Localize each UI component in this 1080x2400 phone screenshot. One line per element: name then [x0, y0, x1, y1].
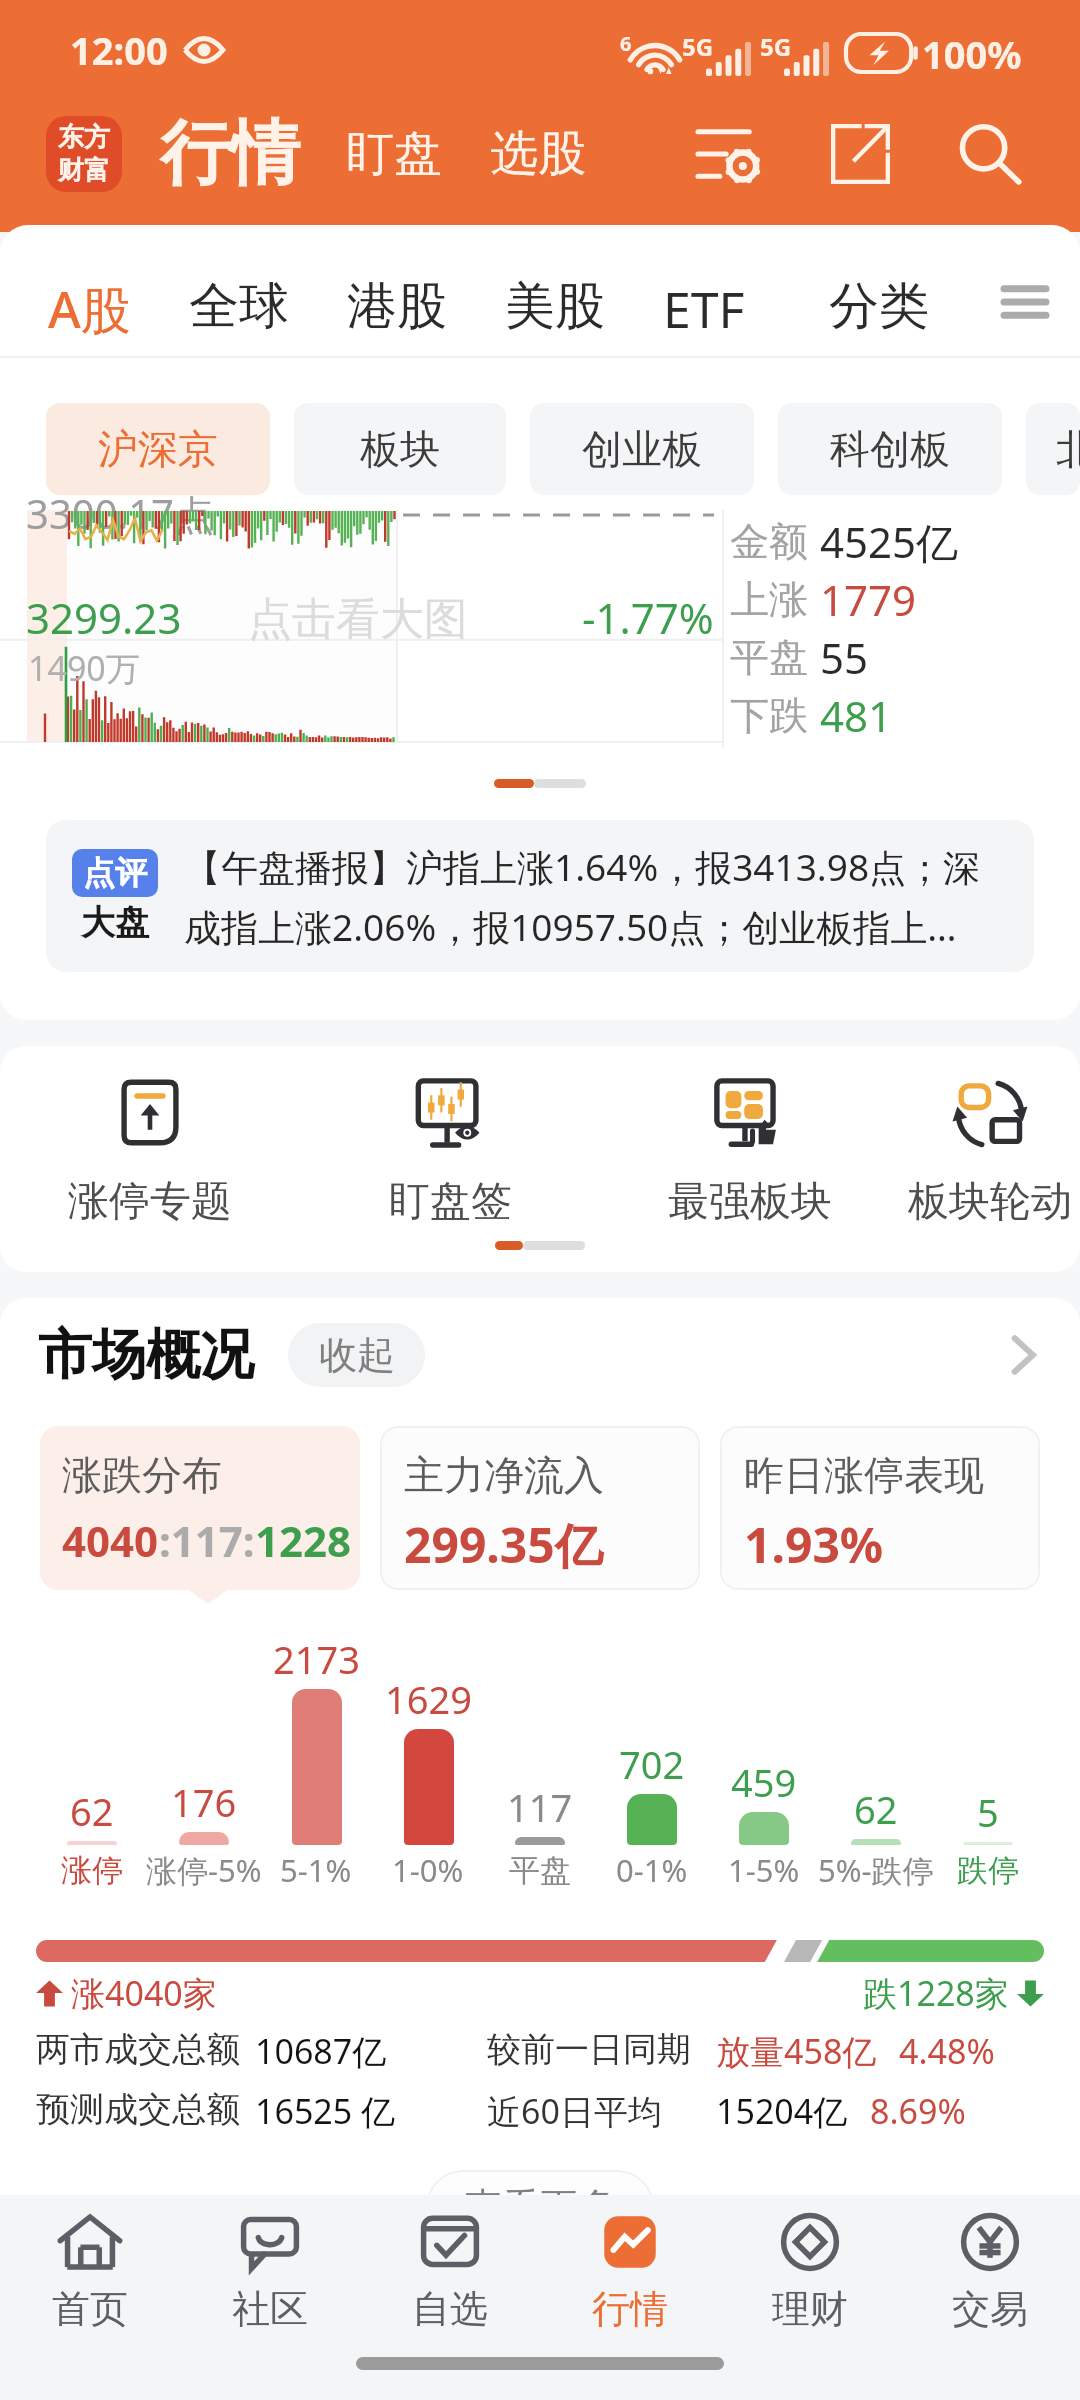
button[interactable]: 搜索 — [948, 116, 1032, 192]
staticText: 主力净流入 — [404, 1450, 604, 1500]
staticText: 创业板 — [582, 424, 702, 474]
staticText: 分类 — [829, 275, 929, 338]
staticText: 理财 — [772, 2285, 848, 2333]
button[interactable]: A股 — [48, 275, 131, 358]
staticText: 5-1% — [280, 1849, 352, 1891]
button[interactable]: 点评 — [46, 820, 1034, 972]
button[interactable]: 查看更多 — [426, 2170, 654, 2203]
staticText: 8.69% — [870, 2088, 966, 2134]
staticText: 5 — [977, 1786, 999, 1838]
staticText: 行情 — [592, 2285, 668, 2333]
staticText: 62 — [70, 1785, 114, 1837]
button[interactable]: 涨跌分布 — [40, 1426, 360, 1590]
staticText: 1629 — [385, 1673, 472, 1725]
staticText: 平盘 — [509, 1851, 571, 1890]
staticText: 美股 — [505, 275, 605, 338]
staticText: 跌停 — [957, 1851, 1019, 1890]
staticText: 板块轮动 — [908, 1176, 1072, 1228]
button[interactable]: 理财 — [720, 2195, 900, 2347]
staticText: 176 — [171, 1776, 237, 1828]
staticText: 299.35亿 — [404, 1512, 603, 1578]
staticText: 东方 — [58, 121, 110, 154]
button[interactable]: 港股 — [347, 275, 447, 358]
staticText: 预测成交总额 — [36, 2088, 240, 2131]
staticText: 55 — [820, 629, 869, 686]
staticText: 5G — [760, 30, 792, 63]
staticText: 较前一日同期 — [487, 2028, 691, 2071]
staticText: 港股 — [347, 275, 447, 338]
button[interactable]: ETF — [663, 275, 745, 358]
button[interactable]: 昨日涨停表现 — [720, 1426, 1040, 1590]
staticText: 跌1228家 — [863, 1970, 1009, 2016]
staticText: 117 — [507, 1781, 573, 1833]
button[interactable]: 东方财富 — [46, 116, 122, 192]
staticText: 收起 — [319, 1331, 395, 1379]
staticText: 财富 — [58, 154, 110, 187]
staticText: 3299.23 — [26, 589, 182, 646]
button[interactable]: 板块 — [294, 403, 506, 495]
button[interactable]: 自选 — [360, 2195, 540, 2347]
button[interactable]: 主力净流入 — [380, 1426, 700, 1590]
staticText: :117: — [159, 1512, 255, 1569]
button[interactable]: 北交所 — [1026, 403, 1080, 495]
staticText: 大盘 — [81, 901, 149, 944]
button[interactable]: 社区 — [180, 2195, 360, 2347]
staticText: 【午盘播报】沪指上涨1.64%，报3413.98点；深成指上涨2.06%，报10… — [184, 841, 1016, 952]
button[interactable]: 上证指数分时图，点击看大图 — [0, 510, 722, 748]
staticText: 市场概况 — [38, 1321, 254, 1389]
staticText: 北交所 — [1056, 424, 1080, 474]
button[interactable]: 选股 — [490, 124, 586, 184]
button[interactable]: 科创板 — [778, 403, 1002, 495]
staticText: 下跌 — [730, 691, 808, 740]
button[interactable]: 盯盘 — [346, 124, 442, 184]
staticText: 6 — [620, 30, 632, 57]
staticText: 2173 — [273, 1633, 360, 1685]
button[interactable]: 分类 — [829, 275, 929, 358]
button[interactable]: 更多 — [992, 269, 1058, 335]
staticText: 查看更多 — [464, 2183, 616, 2203]
staticText: A股 — [48, 275, 131, 343]
staticText: 1228 — [255, 1512, 352, 1569]
staticText: 板块 — [360, 424, 440, 474]
staticText: 1-5% — [728, 1849, 800, 1891]
staticText: 62 — [854, 1783, 898, 1835]
staticText: 481 — [820, 687, 893, 744]
button[interactable]: 盯盘签 — [300, 1078, 600, 1228]
staticText: 4040 — [62, 1512, 159, 1569]
button[interactable]: 沪深京 — [46, 403, 270, 495]
button[interactable]: 行情 — [540, 2195, 720, 2347]
staticText: 点评 — [83, 853, 147, 893]
staticText: 100% — [922, 28, 1022, 80]
button[interactable]: 市场概况 — [38, 1304, 1042, 1406]
staticText: 涨停专题 — [68, 1176, 232, 1228]
button[interactable]: 最强板块 — [600, 1078, 900, 1228]
staticText: 两市成交总额 — [36, 2028, 240, 2071]
staticText: 10687亿 — [255, 2028, 387, 2074]
button[interactable]: 创业板 — [530, 403, 754, 495]
staticText: 近60日平均 — [487, 2088, 662, 2134]
button[interactable]: 全球 — [189, 275, 289, 358]
staticText: 自选 — [412, 2285, 488, 2333]
staticText: 平盘 — [730, 633, 808, 682]
button[interactable]: 分享 — [820, 116, 900, 192]
button[interactable]: 首页 — [0, 2195, 180, 2347]
button[interactable]: 行情 — [160, 110, 300, 198]
staticText: 12:00 — [70, 24, 168, 76]
button[interactable]: 涨停专题 — [0, 1078, 300, 1228]
staticText: 1779 — [820, 571, 917, 628]
staticText: 15204亿 — [716, 2088, 848, 2134]
button[interactable]: 板块轮动 — [900, 1078, 1080, 1228]
staticText: 最强板块 — [668, 1176, 832, 1228]
staticText: 首页 — [52, 2285, 128, 2333]
staticText: 科创板 — [830, 424, 950, 474]
staticText: 点击看大图 — [248, 592, 468, 647]
button[interactable]: 美股 — [505, 275, 605, 358]
staticText: 5%-跌停 — [818, 1849, 934, 1891]
button[interactable]: 交易 — [900, 2195, 1080, 2347]
staticText: 1490万 — [28, 645, 140, 691]
button[interactable]: 自选设置 — [688, 116, 772, 192]
staticText: 702 — [619, 1738, 685, 1790]
staticText: 3300.17点 — [26, 486, 214, 541]
staticText: 昨日涨停表现 — [744, 1450, 984, 1500]
staticText: 涨停 — [61, 1851, 123, 1890]
